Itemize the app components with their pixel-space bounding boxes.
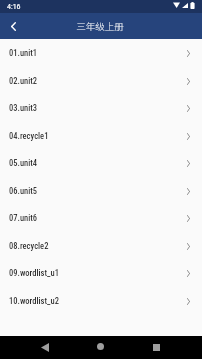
staticText: 10.wordlist_u2 xyxy=(9,296,59,306)
button[interactable]: 09.wordlist_u1 xyxy=(0,259,202,287)
other: Mobile signal xyxy=(182,3,188,8)
staticText: 02.unit2 xyxy=(9,76,38,86)
staticText: 01.unit1 xyxy=(9,48,38,58)
staticText: 05.unit4 xyxy=(9,158,38,168)
button[interactable]: 02.unit2 xyxy=(0,67,202,95)
staticText: 04.recycle1 xyxy=(9,131,49,141)
button[interactable]: Recent apps xyxy=(145,336,168,359)
button[interactable]: Back xyxy=(33,336,56,359)
button[interactable]: 04.recycle1 xyxy=(0,122,202,150)
other: Battery xyxy=(190,2,195,9)
button[interactable]: 05.unit4 xyxy=(0,149,202,177)
button[interactable]: Back xyxy=(0,13,26,39)
staticText: 09.wordlist_u1 xyxy=(9,268,59,278)
button[interactable]: 07.unit6 xyxy=(0,204,202,232)
button[interactable]: 08.recycle2 xyxy=(0,232,202,260)
staticText: 08.recycle2 xyxy=(9,241,49,251)
button[interactable]: 03.unit3 xyxy=(0,94,202,122)
button[interactable]: 01.unit1 xyxy=(0,39,202,67)
button[interactable]: 10.wordlist_u2 xyxy=(0,287,202,315)
staticText: 06.unit5 xyxy=(9,186,38,196)
button[interactable]: 06.unit5 xyxy=(0,177,202,205)
other: Wi-Fi xyxy=(173,2,180,8)
staticText: 三年级上册 xyxy=(76,19,124,33)
button[interactable]: Home xyxy=(89,336,112,359)
staticText: 4:16 xyxy=(7,3,21,11)
staticText: 03.unit3 xyxy=(9,103,38,113)
staticText: 07.unit6 xyxy=(9,213,38,223)
